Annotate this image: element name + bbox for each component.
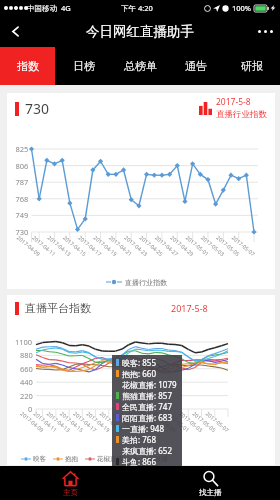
staticText: 研报 <box>241 59 263 73</box>
button[interactable]: 总榜单 <box>112 47 168 85</box>
staticText: 找主播 <box>199 488 222 497</box>
button[interactable]: 指数 <box>0 47 55 85</box>
staticText: 直播行业指数 <box>216 109 267 120</box>
staticText: 4G <box>61 3 71 13</box>
staticText: 今日网红直播助手 <box>86 23 194 40</box>
staticText: 日榜 <box>73 59 95 73</box>
staticText: 主页 <box>63 488 78 497</box>
staticText: 花椒直播: 1079 <box>122 379 177 390</box>
button[interactable]: 研报 <box>224 47 280 85</box>
staticText: 一直播: 948 <box>122 423 164 434</box>
button[interactable]: 日榜 <box>55 47 112 85</box>
staticText: 斗鱼: 866 <box>122 456 156 467</box>
staticText: 抱抱: 660 <box>122 368 156 379</box>
staticText: 2017-5-8 <box>171 302 208 314</box>
staticText: 全民直播: 747 <box>122 401 172 412</box>
button[interactable]: 通告 <box>168 47 224 85</box>
staticText: 直播平台指数 <box>25 301 91 315</box>
staticText: 下午 4:20 <box>121 3 153 13</box>
button[interactable]: More options <box>250 16 280 47</box>
staticText: 通告 <box>185 59 207 73</box>
staticText: 总榜单 <box>124 59 157 73</box>
button[interactable]: Back <box>0 16 30 47</box>
staticText: 映客: 855 <box>122 357 156 368</box>
staticText: 来疯直播: 652 <box>122 445 172 456</box>
button[interactable]: 找主播 <box>140 466 280 500</box>
staticText: 熊猫直播: 857 <box>122 390 172 401</box>
button[interactable]: 主页 <box>0 466 140 500</box>
staticText: 730 <box>25 99 50 118</box>
staticText: 中国移动 <box>27 4 57 13</box>
staticText: 陌陌直播: 683 <box>122 412 172 423</box>
staticText: 指数 <box>17 59 39 73</box>
staticText: 美拍: 768 <box>122 434 156 445</box>
staticText: 100% <box>232 3 252 13</box>
staticText: 2017-5-8 <box>216 96 251 108</box>
